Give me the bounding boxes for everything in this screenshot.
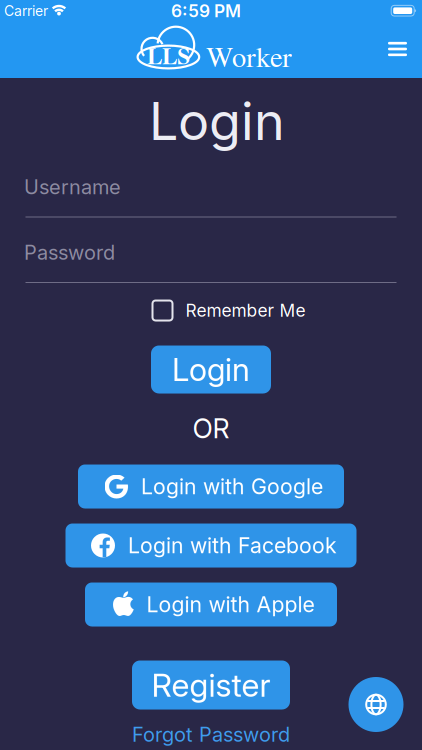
button[interactable]: Register — [132, 660, 290, 709]
staticText: Login with Google — [141, 474, 323, 499]
staticText: LLS — [147, 46, 190, 69]
button[interactable]: Forgot Password — [132, 723, 290, 745]
staticText:  — [104, 472, 128, 500]
button[interactable]: Username — [0, 177, 422, 217]
staticText: Login — [149, 89, 285, 152]
staticText:  — [113, 591, 134, 618]
button[interactable]: Password — [0, 242, 422, 283]
button[interactable]: Menu — [388, 42, 407, 56]
staticText:  — [98, 537, 110, 559]
staticText: Worker — [206, 44, 292, 73]
button[interactable]: Login — [151, 345, 271, 393]
staticText: Carrier — [4, 2, 48, 19]
staticText: Password — [24, 240, 115, 265]
staticText: Forgot Password — [132, 722, 290, 747]
staticText: 6:59 PM — [171, 0, 241, 21]
staticText: Login with Facebook — [128, 533, 337, 558]
staticText: Login — [172, 350, 250, 388]
staticText: Register — [151, 666, 270, 704]
button[interactable]:  — [78, 464, 344, 508]
button[interactable]: Language — [348, 677, 403, 732]
button[interactable]:  — [65, 523, 356, 567]
staticText: Username — [24, 175, 121, 199]
staticText: Remember Me — [185, 300, 305, 321]
staticText: OR — [192, 412, 229, 445]
button[interactable]: Remember Me — [152, 300, 305, 320]
button[interactable]:  — [85, 582, 337, 626]
staticText: Login with Apple — [146, 592, 314, 617]
